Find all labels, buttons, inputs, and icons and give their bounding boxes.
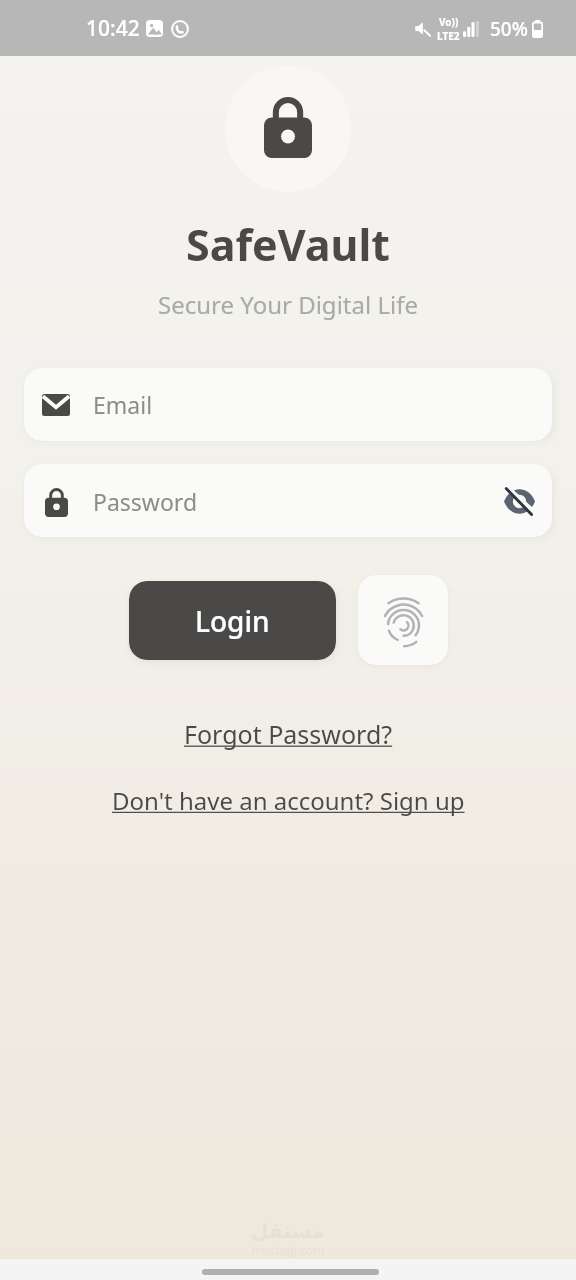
staticText: Login (195, 602, 270, 640)
staticText: 10:42 (86, 14, 140, 43)
button[interactable]: Show password (495, 477, 543, 525)
staticText: Secure Your Digital Life (158, 288, 418, 321)
button[interactable]: Login (129, 581, 336, 660)
button[interactable]: Email (24, 368, 552, 441)
button[interactable]: Fingerprint login (358, 575, 448, 665)
button[interactable]: Don't have an account? Sign up (104, 781, 473, 820)
button[interactable]: Password (24, 464, 552, 537)
staticText: Email (93, 389, 153, 420)
staticText: LTE2 (437, 29, 460, 43)
staticText: SafeVault (186, 215, 391, 274)
staticText: مستقل (251, 1219, 325, 1242)
staticText: Password (93, 486, 198, 517)
staticText: 50% (490, 16, 528, 42)
button[interactable]: Forgot Password? (176, 714, 401, 754)
staticText: Vo)) (439, 15, 459, 29)
